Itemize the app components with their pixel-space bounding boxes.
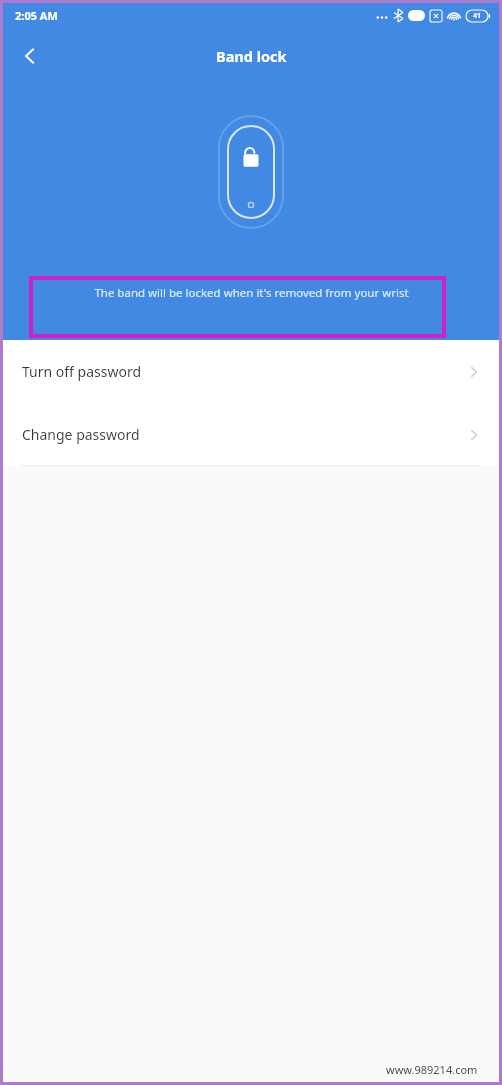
staticText: www.989214.com bbox=[386, 1062, 478, 1077]
staticText: Band lock bbox=[216, 46, 287, 66]
staticText: Turn off password bbox=[22, 362, 142, 381]
button[interactable]: Turn off password bbox=[0, 340, 502, 403]
staticText: The band will be locked when it's remove… bbox=[94, 285, 409, 301]
staticText: 2:05 AM bbox=[15, 8, 58, 23]
button[interactable]: Change password bbox=[0, 403, 502, 466]
button[interactable]: Back bbox=[8, 34, 52, 78]
staticText: Change password bbox=[22, 425, 140, 444]
staticText: 41 bbox=[473, 11, 482, 21]
